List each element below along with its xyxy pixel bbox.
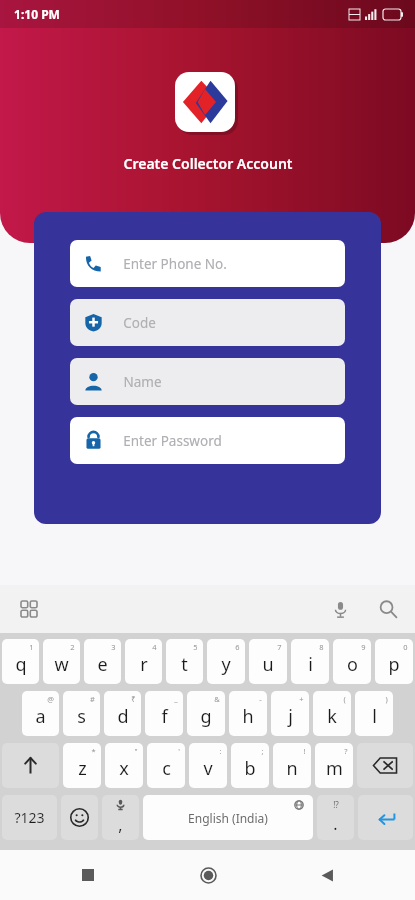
staticText: l [372,704,377,729]
staticText: h [242,704,254,729]
button[interactable]: Home [188,855,228,895]
button[interactable]: ?123 [2,795,57,840]
button[interactable]: * [63,743,101,788]
button[interactable]: Code [70,299,345,346]
button[interactable]: ; [231,743,269,788]
staticText: v [203,756,213,781]
staticText: e [97,652,108,677]
staticText: English (India) [188,810,268,826]
button[interactable]: 6 [207,639,245,684]
button[interactable]: 1 [2,639,39,684]
staticText: " [134,746,138,756]
staticText: t [181,652,188,677]
staticText: 8 [319,642,324,652]
button[interactable]: + [271,691,309,736]
staticText: g [200,704,212,729]
staticText: n [286,756,298,781]
staticText: @ [47,694,54,704]
button[interactable]: English (India) [143,795,313,840]
staticText: 7 [277,642,282,652]
button[interactable]: Keyboard menu [16,596,42,622]
staticText: ' [178,746,180,756]
staticText: s [77,704,86,729]
button[interactable]: ( [313,691,351,736]
button[interactable]: " [105,743,143,788]
button[interactable]: 9 [333,639,371,684]
button[interactable]: ) [355,691,393,736]
staticText: d [117,704,129,729]
button[interactable]: Backspace [357,743,413,788]
button[interactable]: Back [307,855,347,895]
button[interactable]: Enter Phone No. [70,240,345,287]
button[interactable]: ! [273,743,311,788]
staticText: Name [123,373,162,391]
staticText: w [54,652,69,677]
button[interactable]: Enter Password [70,417,345,464]
button[interactable]: Name [70,358,345,405]
staticText: 3 [111,642,116,652]
button[interactable]: Enter [358,795,413,840]
button[interactable]: Search [375,596,401,622]
button[interactable]: 5 [166,639,203,684]
staticText: i [308,652,313,677]
button[interactable]: !? [317,795,354,840]
button[interactable]: Recent apps [68,855,108,895]
staticText: c [162,756,171,781]
button[interactable]: 2 [43,639,80,684]
staticText: j [288,704,293,729]
staticText: # [90,694,95,704]
staticText: . [333,813,338,835]
staticText: + [299,694,304,704]
button[interactable]: 8 [291,639,329,684]
staticText: ₹ [131,694,136,704]
staticText: p [388,652,400,677]
staticText: ? [344,746,348,756]
staticText: - [259,694,262,704]
button[interactable]: Shift [2,743,59,788]
staticText: k [327,704,337,729]
staticText: m [326,756,343,781]
button[interactable]: 3 [84,639,121,684]
button[interactable]: _ [145,691,183,736]
staticText: 5 [193,642,198,652]
button[interactable]: 0 [375,639,413,684]
staticText: Code [123,314,156,332]
staticText: 1:10 PM [14,6,60,22]
staticText: Enter Password [123,432,222,450]
staticText: x [119,756,129,781]
staticText: q [15,652,27,677]
button[interactable]: ? [315,743,353,788]
staticText: * [91,746,96,756]
button[interactable]: Voice input [327,596,353,622]
staticText: ) [385,694,388,704]
button[interactable]: & [187,691,225,736]
staticText: !? [333,799,339,810]
button[interactable]: ₹ [104,691,141,736]
staticText: : [219,746,222,756]
staticText: f [161,704,168,729]
button[interactable]: 7 [249,639,287,684]
staticText: , [118,814,123,836]
staticText: a [35,704,46,729]
staticText: 9 [361,642,366,652]
staticText: ?123 [14,808,45,827]
staticText: 6 [235,642,240,652]
button[interactable]: # [63,691,100,736]
staticText: ( [343,694,346,704]
button[interactable]: : [189,743,227,788]
button[interactable]: 4 [125,639,162,684]
staticText: 1 [29,642,34,652]
staticText: 2 [70,642,75,652]
staticText: 0 [403,642,408,652]
button[interactable]: , [102,795,139,840]
staticText: 4 [152,642,157,652]
button[interactable]: Emoji [61,795,98,840]
button[interactable]: - [229,691,267,736]
button[interactable]: ' [147,743,185,788]
staticText: ; [261,746,264,756]
staticText: b [244,756,256,781]
staticText: o [347,652,358,677]
staticText: & [214,694,220,704]
staticText: Enter Phone No. [123,255,227,273]
button[interactable]: @ [22,691,59,736]
